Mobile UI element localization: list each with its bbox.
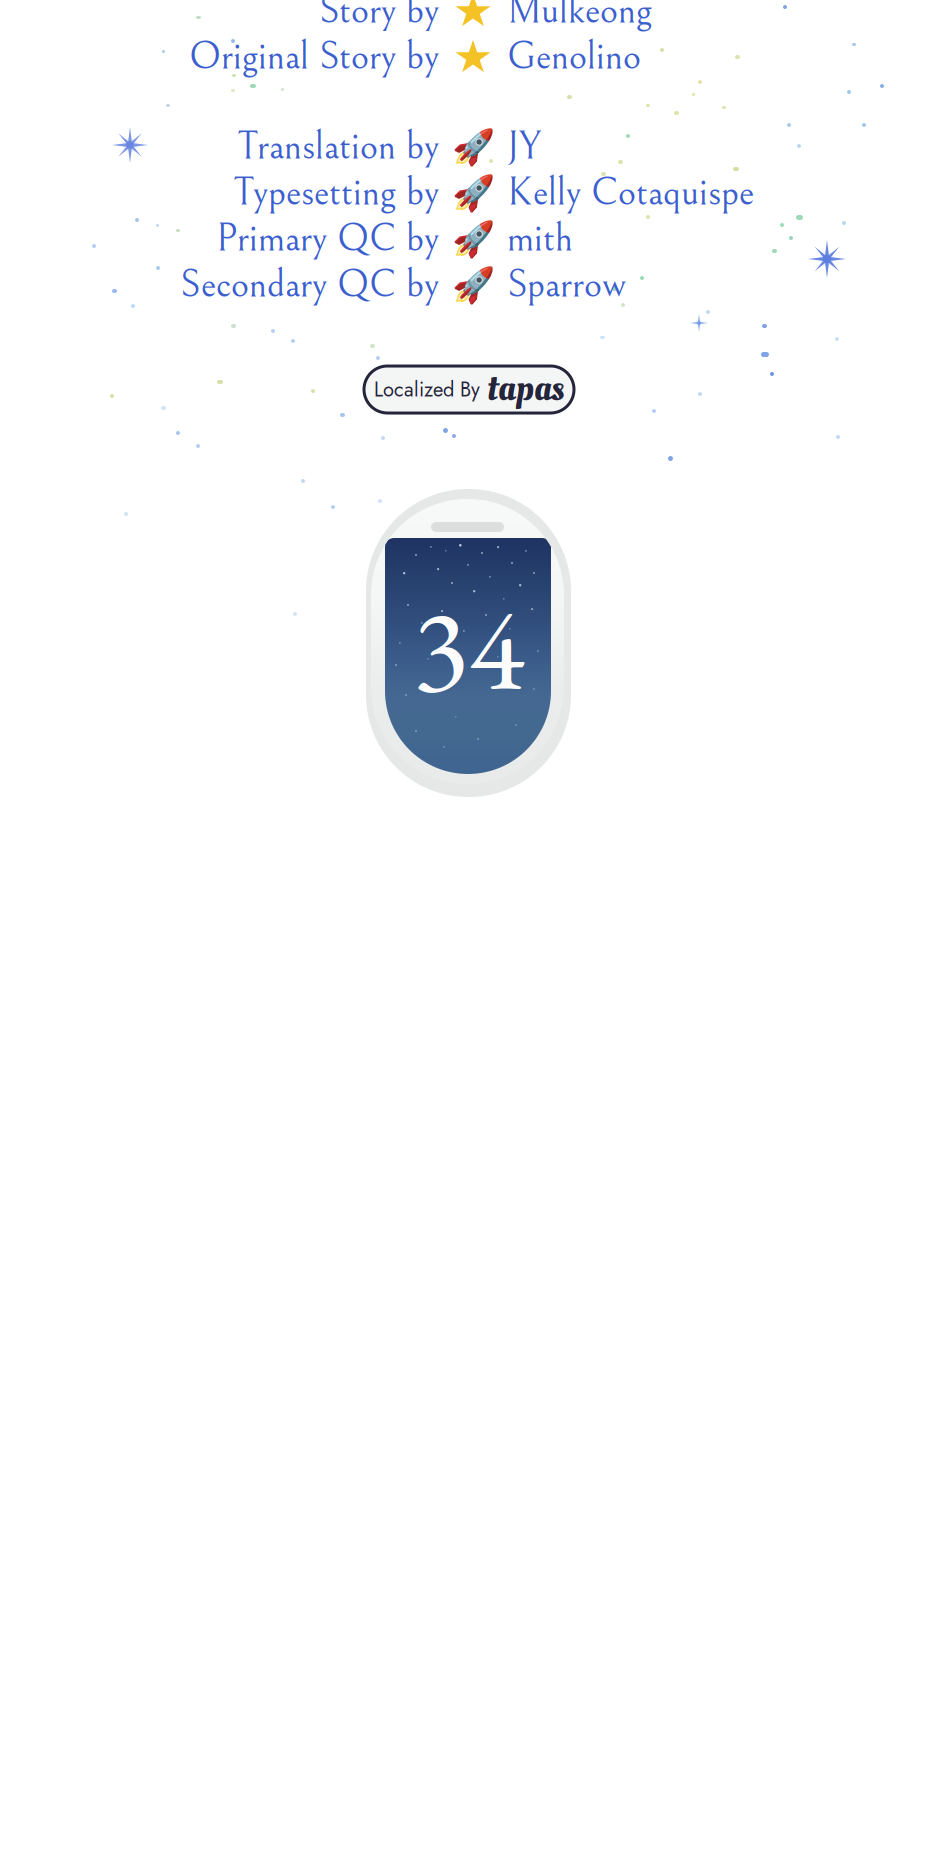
- staticText: tapas: [487, 363, 564, 414]
- staticText: 🚀: [451, 173, 494, 213]
- staticText: 🚀: [451, 127, 494, 167]
- staticText: 34: [412, 572, 524, 724]
- staticText: Genolino: [507, 35, 641, 79]
- staticText: Primary QC by: [216, 217, 439, 261]
- button[interactable]: Localized By: [364, 366, 574, 413]
- staticText: JY: [507, 125, 541, 169]
- staticText: Typesetting by: [233, 171, 439, 215]
- staticText: Secondary QC by: [180, 263, 439, 307]
- staticText: 🚀: [451, 219, 494, 259]
- staticText: Story by: [319, 0, 439, 33]
- staticText: Mulkeong: [507, 0, 652, 33]
- staticText: 🚀: [451, 265, 494, 305]
- staticText: Original Story by: [189, 35, 439, 79]
- staticText: Translation by: [237, 125, 439, 169]
- staticText: Localized By: [374, 375, 480, 404]
- staticText: Sparrow: [507, 263, 626, 307]
- staticText: mith: [507, 217, 573, 261]
- staticText: Kelly Cotaquispe: [507, 171, 754, 215]
